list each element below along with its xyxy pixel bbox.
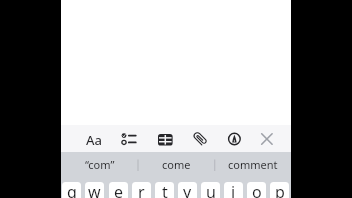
button[interactable]: come bbox=[138, 152, 215, 175]
button[interactable]: u bbox=[201, 182, 220, 198]
button[interactable]: p bbox=[270, 182, 289, 198]
button[interactable]: comment bbox=[214, 152, 291, 175]
staticText: “com” bbox=[85, 157, 115, 172]
button[interactable]: o bbox=[247, 182, 266, 198]
button[interactable] bbox=[253, 125, 281, 152]
staticText: y bbox=[183, 182, 192, 198]
staticText: come bbox=[162, 157, 191, 172]
button[interactable]: i bbox=[224, 182, 243, 198]
button[interactable] bbox=[114, 125, 142, 152]
staticText: u bbox=[206, 182, 216, 198]
staticText: o bbox=[252, 182, 262, 198]
button[interactable]: Aa bbox=[78, 127, 109, 152]
staticText: w bbox=[88, 182, 101, 198]
button[interactable] bbox=[220, 125, 248, 152]
staticText: i bbox=[231, 182, 236, 198]
button[interactable]: t bbox=[155, 182, 174, 198]
staticText: t bbox=[162, 182, 168, 198]
staticText: Aa bbox=[86, 131, 102, 149]
button[interactable]: q bbox=[62, 182, 81, 198]
staticText: e bbox=[114, 182, 124, 198]
button[interactable] bbox=[186, 125, 214, 152]
button[interactable]: w bbox=[85, 182, 104, 198]
staticText: q bbox=[67, 182, 77, 198]
button[interactable]: “com” bbox=[61, 152, 138, 175]
staticText: r bbox=[138, 182, 145, 198]
button[interactable]: y bbox=[178, 182, 197, 198]
staticText: p bbox=[275, 182, 285, 198]
button[interactable]: e bbox=[109, 182, 128, 198]
button[interactable] bbox=[151, 125, 179, 152]
button[interactable]: r bbox=[132, 182, 151, 198]
staticText: comment bbox=[228, 157, 278, 172]
